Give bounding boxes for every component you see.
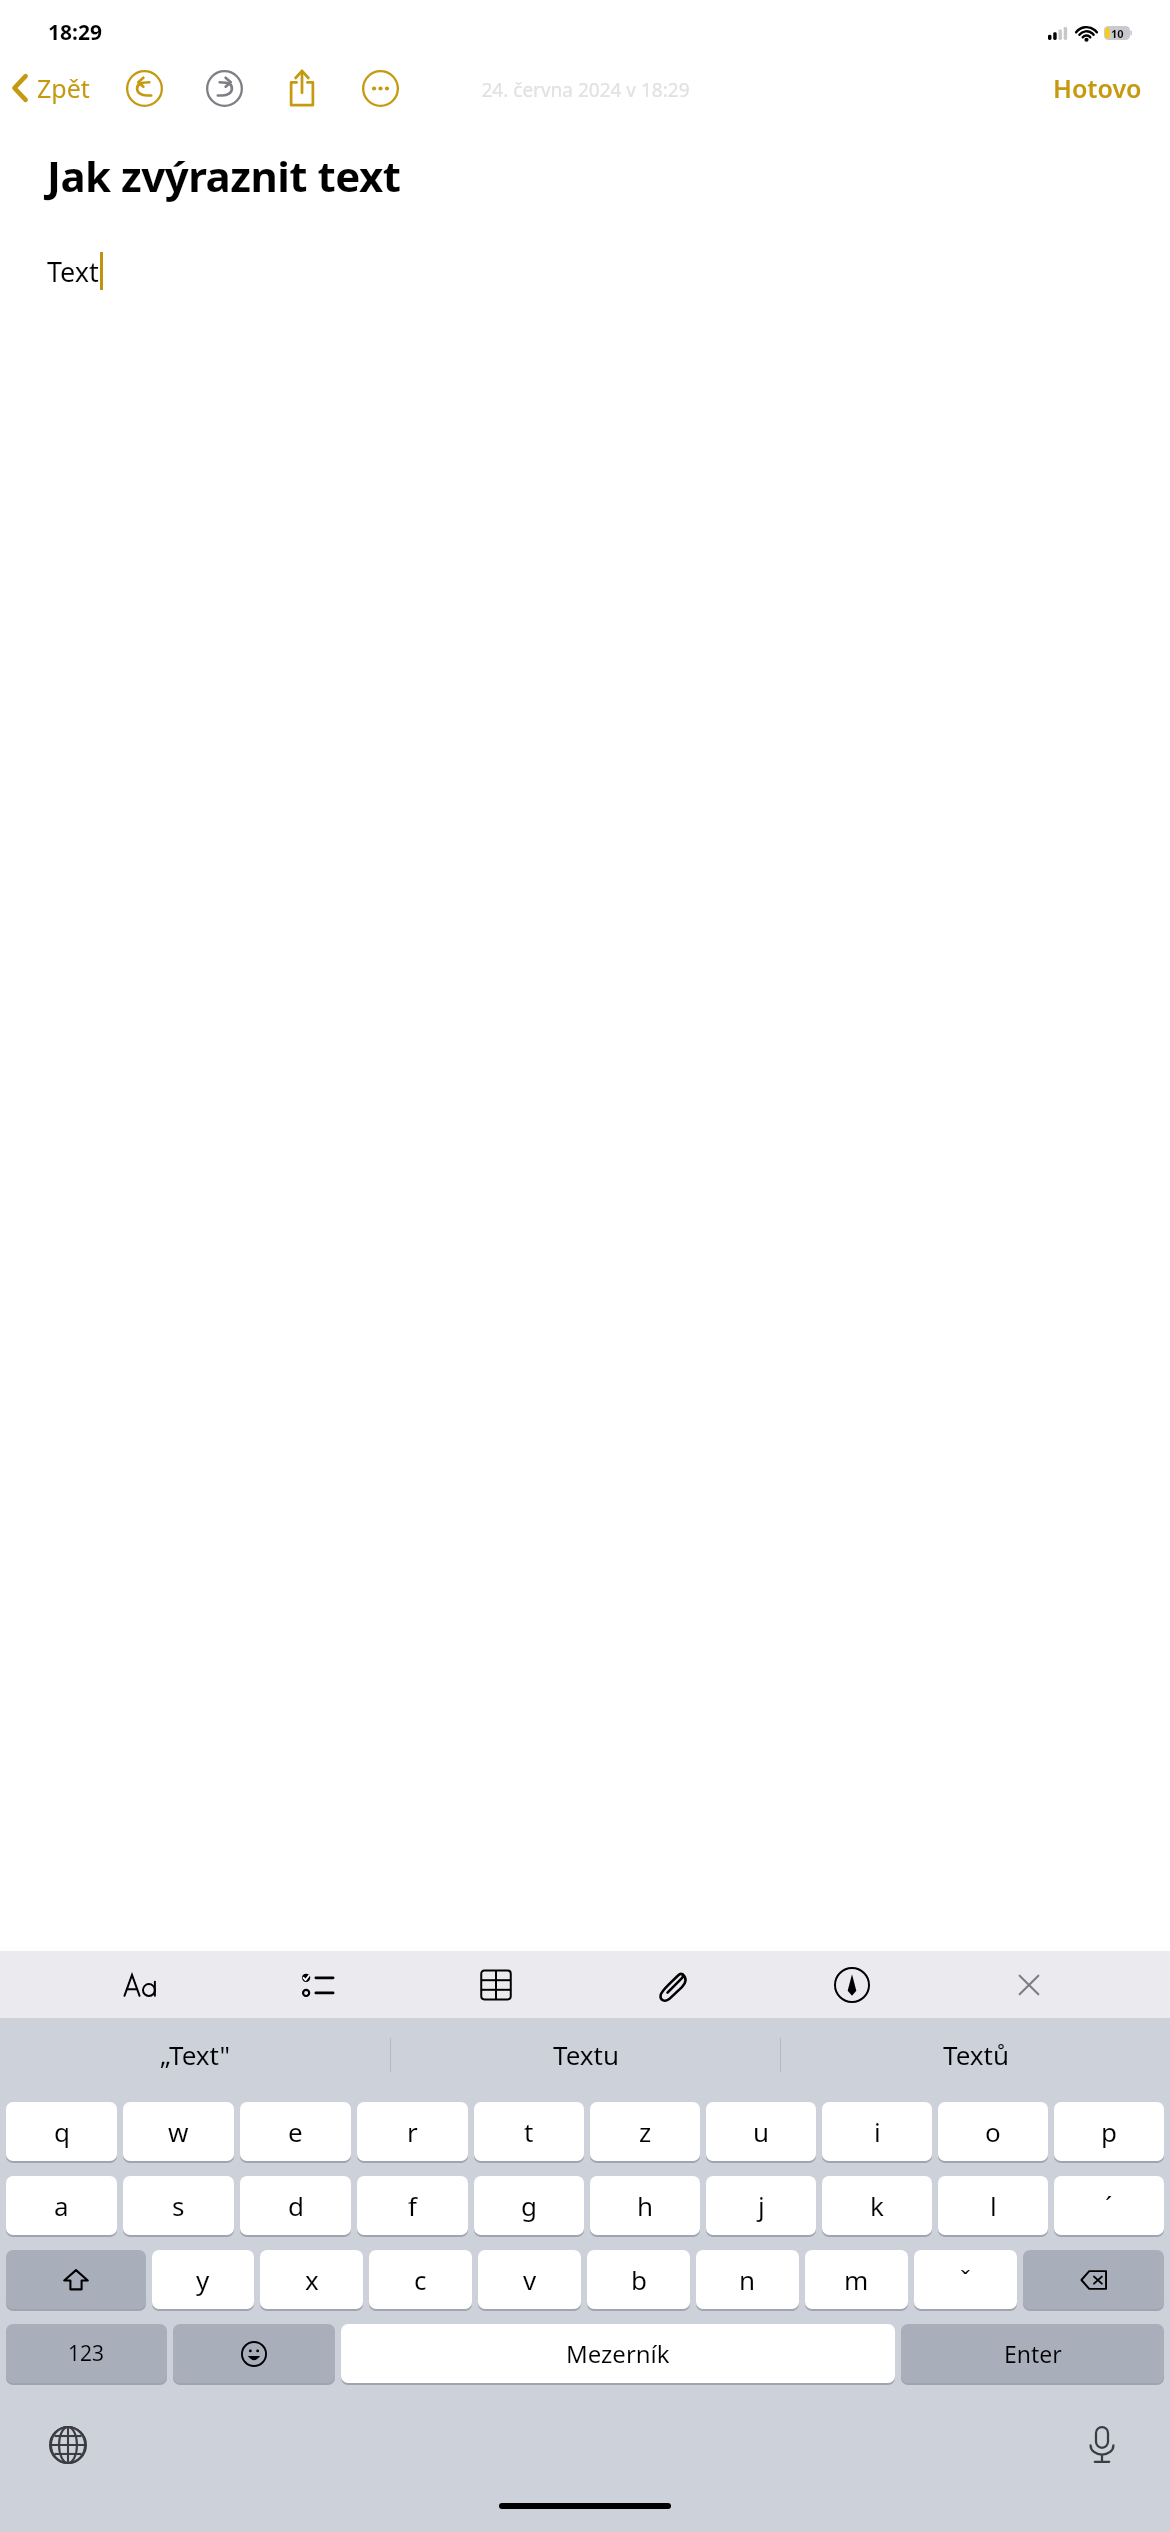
button[interactable]: More: [354, 62, 406, 114]
staticText: m: [844, 2262, 869, 2297]
button[interactable]: b: [587, 2250, 690, 2311]
staticText: a: [54, 2188, 69, 2223]
button[interactable]: q: [6, 2102, 117, 2163]
staticText: k: [870, 2188, 884, 2223]
staticText: ´: [1105, 2188, 1113, 2223]
staticText: 123: [68, 2339, 105, 2368]
staticText: Hotovo: [1053, 71, 1142, 105]
button[interactable]: v: [478, 2250, 581, 2311]
staticText: n: [739, 2262, 756, 2297]
button[interactable]: a: [6, 2176, 117, 2237]
staticText: e: [288, 2114, 303, 2149]
staticText: l: [990, 2188, 997, 2223]
button[interactable]: d: [240, 2176, 351, 2237]
button[interactable]: k: [822, 2176, 932, 2237]
button[interactable]: s: [123, 2176, 234, 2237]
staticText: h: [637, 2188, 654, 2223]
staticText: y: [196, 2262, 210, 2297]
staticText: Zpět: [37, 71, 90, 105]
staticText: Textů: [943, 2037, 1009, 2072]
button[interactable]: Checklist: [281, 1954, 355, 2016]
button[interactable]: Zpět: [0, 67, 94, 109]
button[interactable]: Markup: [815, 1954, 889, 2016]
button[interactable]: Format text: [104, 1954, 178, 2016]
button[interactable]: Enter: [901, 2324, 1164, 2385]
staticText: u: [753, 2114, 770, 2149]
button[interactable]: ˇ: [914, 2250, 1017, 2311]
staticText: 18:29: [48, 18, 102, 47]
staticText: j: [758, 2188, 765, 2223]
staticText: b: [631, 2262, 647, 2297]
staticText: c: [414, 2262, 427, 2297]
button[interactable]: 123: [6, 2324, 167, 2385]
button[interactable]: p: [1054, 2102, 1164, 2163]
button[interactable]: y: [152, 2250, 254, 2311]
staticText: z: [639, 2114, 652, 2149]
button[interactable]: Textů: [781, 2018, 1170, 2091]
button[interactable]: Mezerník: [341, 2324, 895, 2385]
button[interactable]: Backspace: [1023, 2250, 1164, 2311]
button[interactable]: c: [369, 2250, 472, 2311]
staticText: Mezerník: [566, 2337, 670, 2370]
staticText: f: [408, 2188, 417, 2223]
button[interactable]: ´: [1054, 2176, 1164, 2237]
button[interactable]: „Text": [0, 2018, 390, 2091]
staticText: ˇ: [960, 2262, 971, 2297]
button[interactable]: Table: [459, 1954, 533, 2016]
button[interactable]: Emoji: [173, 2324, 335, 2385]
button[interactable]: Textu: [391, 2018, 780, 2091]
button[interactable]: o: [938, 2102, 1048, 2163]
staticText: x: [305, 2262, 319, 2297]
button[interactable]: l: [938, 2176, 1048, 2237]
button[interactable]: z: [590, 2102, 700, 2163]
button[interactable]: r: [357, 2102, 468, 2163]
button[interactable]: Close keyboard: [992, 1954, 1066, 2016]
staticText: s: [172, 2188, 185, 2223]
button[interactable]: i: [822, 2102, 932, 2163]
button[interactable]: x: [260, 2250, 363, 2311]
button[interactable]: e: [240, 2102, 351, 2163]
button[interactable]: Hotovo: [1039, 65, 1156, 111]
button[interactable]: m: [805, 2250, 908, 2311]
button[interactable]: j: [706, 2176, 816, 2237]
staticText: q: [54, 2114, 70, 2149]
button[interactable]: u: [706, 2102, 816, 2163]
staticText: Enter: [1004, 2338, 1062, 2369]
staticText: g: [521, 2188, 537, 2223]
button[interactable]: Jak zvýraznit text: [47, 147, 401, 204]
staticText: o: [985, 2114, 1001, 2149]
staticText: p: [1101, 2114, 1117, 2149]
button[interactable]: Change keyboard: [40, 2417, 96, 2473]
staticText: Textu: [553, 2037, 619, 2072]
button[interactable]: Dictation: [1074, 2417, 1130, 2473]
staticText: d: [288, 2188, 304, 2223]
staticText: „Text": [160, 2037, 231, 2072]
button[interactable]: n: [696, 2250, 799, 2311]
button[interactable]: Attach: [637, 1954, 711, 2016]
button[interactable]: h: [590, 2176, 700, 2237]
button[interactable]: Share: [276, 62, 328, 114]
button[interactable]: f: [357, 2176, 468, 2237]
staticText: w: [168, 2114, 189, 2149]
button[interactable]: w: [123, 2102, 234, 2163]
button[interactable]: g: [474, 2176, 584, 2237]
staticText: i: [874, 2114, 881, 2149]
staticText: 10: [1111, 26, 1124, 40]
button[interactable]: Redo: [198, 62, 250, 114]
staticText: t: [524, 2114, 534, 2149]
button[interactable]: t: [474, 2102, 584, 2163]
button[interactable]: Shift: [6, 2250, 146, 2311]
staticText: r: [407, 2114, 418, 2149]
staticText: v: [523, 2262, 537, 2297]
staticText: 24. června 2024 v 18:29: [481, 77, 690, 103]
staticText: Text: [47, 253, 99, 290]
button[interactable]: Undo: [118, 62, 170, 114]
